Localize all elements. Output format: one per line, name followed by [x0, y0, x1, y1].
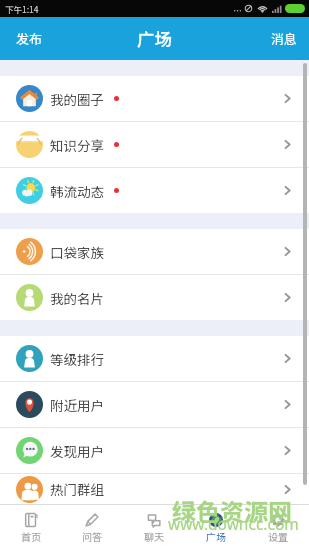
- button[interactable]: 附近用户: [0, 382, 309, 427]
- staticText: 问答: [82, 529, 102, 543]
- staticText: 广场: [137, 26, 172, 51]
- button[interactable]: 韩流动态: [0, 168, 309, 213]
- button[interactable]: 等级排行: [0, 336, 309, 381]
- staticText: 聊天: [144, 529, 164, 543]
- button[interactable]: 消息: [260, 17, 309, 60]
- button[interactable]: 聊天: [123, 505, 185, 550]
- staticText: 消息: [271, 29, 298, 48]
- staticText: 等级排行: [50, 349, 104, 369]
- staticText: 韩流动态: [50, 181, 104, 201]
- staticText: 附近用户: [50, 395, 104, 415]
- button[interactable]: 热门群组: [0, 474, 309, 504]
- button[interactable]: 我的名片: [0, 275, 309, 320]
- staticText: 发现用户: [50, 441, 104, 461]
- button[interactable]: 我的圈子: [0, 76, 309, 121]
- staticText: 设置: [268, 529, 288, 543]
- button[interactable]: 口袋家族: [0, 229, 309, 274]
- staticText: 口袋家族: [50, 242, 104, 262]
- button[interactable]: 设置: [247, 505, 309, 550]
- button[interactable]: 问答: [61, 505, 123, 550]
- button[interactable]: 知识分享: [0, 122, 309, 167]
- staticText: 下午1:14: [5, 3, 39, 15]
- staticText: 知识分享: [50, 135, 104, 155]
- button[interactable]: 发现用户: [0, 428, 309, 473]
- staticText: 发布: [16, 29, 43, 48]
- staticText: 我的名片: [50, 288, 104, 308]
- staticText: www.downcc.com: [168, 513, 299, 534]
- staticText: 我的圈子: [50, 89, 104, 109]
- staticText: 绿色资源网: [172, 493, 292, 528]
- button[interactable]: 首页: [0, 505, 61, 550]
- button[interactable]: 发布: [0, 17, 59, 60]
- staticText: 首页: [21, 529, 41, 543]
- staticText: 广场: [206, 529, 226, 543]
- button[interactable]: 广场: [185, 505, 247, 550]
- staticText: 热门群组: [50, 479, 104, 499]
